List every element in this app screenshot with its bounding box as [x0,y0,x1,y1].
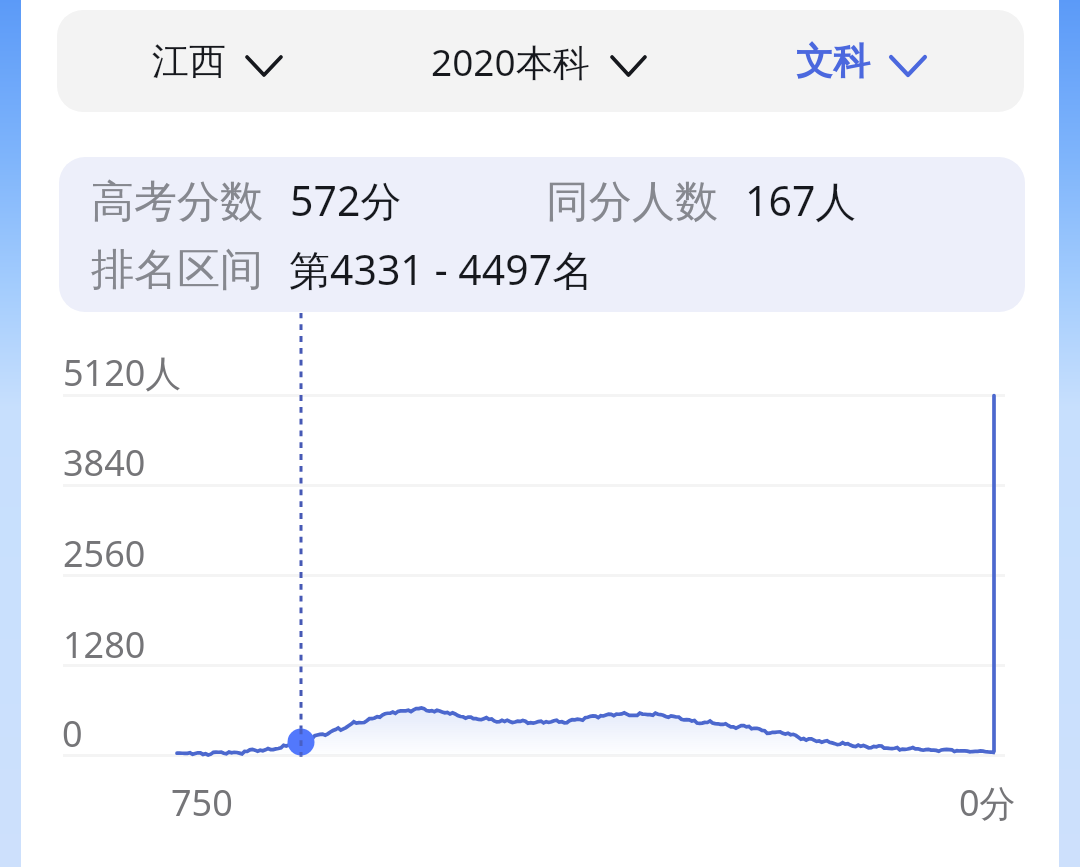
staticText: 2020本科 [431,36,590,87]
staticText: 5120人 [63,348,182,397]
staticText: 第4331 - 4497名 [289,241,594,297]
staticText: 167人 [745,172,857,228]
staticText: 3840 [63,438,146,487]
staticText: 0 [62,709,83,758]
staticText: 572分 [290,172,402,228]
staticText: 1280 [63,620,146,669]
button[interactable] [59,157,1025,312]
staticText: 750 [171,778,233,827]
staticText: 同分人数 [546,175,718,229]
staticText: 高考分数 [91,175,263,229]
other: 展开2020本科 选项 [405,10,671,112]
button[interactable]: 文科 [770,10,951,112]
staticText: 0分 [959,778,1016,827]
staticText: 排名区间 [91,243,263,297]
button[interactable]: 江西 [126,10,307,112]
other: 展开江西 选项 [126,10,307,112]
staticText: 文科 [796,38,870,85]
staticText: 2560 [63,529,146,578]
staticText: 江西 [152,38,226,85]
other: 展开文科 选项 [770,10,951,112]
button[interactable]: 2020本科 [405,10,671,112]
